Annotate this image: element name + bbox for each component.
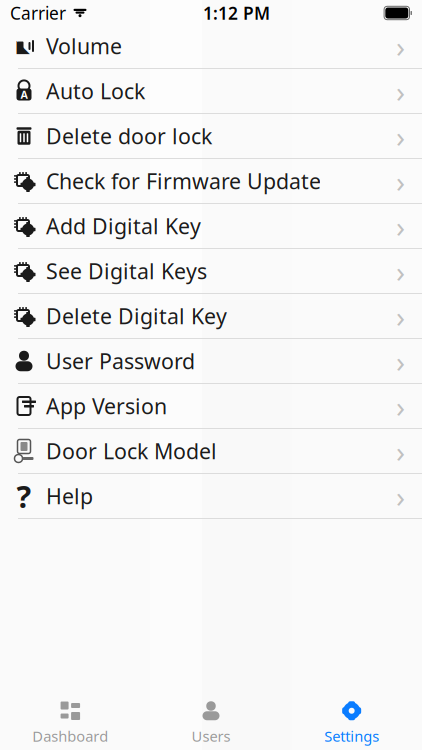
button[interactable]: See Digital Keys xyxy=(0,249,422,294)
staticText: Auto Lock xyxy=(46,77,145,105)
staticText: › xyxy=(396,116,405,155)
button[interactable]: App Version xyxy=(0,384,422,429)
staticText: Door Lock Model xyxy=(46,437,217,465)
button[interactable]: A xyxy=(0,69,422,114)
staticText: Dashboard xyxy=(32,726,108,746)
staticText: ? xyxy=(16,476,31,516)
staticText: › xyxy=(396,206,405,245)
button[interactable]: Delete door lock xyxy=(0,114,422,159)
staticText: User Password xyxy=(46,347,195,375)
staticText: See Digital Keys xyxy=(46,257,207,285)
button[interactable]: User Password xyxy=(0,339,422,384)
staticText: App Version xyxy=(46,392,167,420)
staticText: Check for Firmware Update xyxy=(46,167,321,195)
staticText: Help xyxy=(46,482,93,510)
staticText: › xyxy=(396,341,405,380)
staticText: Carrier xyxy=(10,1,66,24)
staticText: A xyxy=(20,87,27,102)
staticText: ◥ xyxy=(74,5,85,21)
staticText: Delete Digital Key xyxy=(46,302,227,330)
staticText: › xyxy=(396,26,405,65)
staticText: › xyxy=(396,161,405,200)
staticText: › xyxy=(396,386,405,425)
button[interactable]: ? xyxy=(0,474,422,519)
staticText: › xyxy=(396,71,405,110)
button[interactable]: Dashboard xyxy=(0,691,141,750)
button[interactable]: Delete Digital Key xyxy=(0,294,422,339)
staticText: 1:12 PM xyxy=(203,1,270,24)
staticText: Settings xyxy=(324,726,379,746)
staticText: Add Digital Key xyxy=(46,212,201,240)
button[interactable]: Settings xyxy=(281,691,422,750)
button[interactable]: Door Lock Model xyxy=(0,429,422,474)
staticText: Users xyxy=(191,726,230,746)
button[interactable]: Check for Firmware Update xyxy=(0,159,422,204)
staticText: › xyxy=(396,296,405,335)
button[interactable]: Add Digital Key xyxy=(0,204,422,249)
staticText: ◣ xyxy=(16,36,29,56)
staticText: Delete door lock xyxy=(46,122,212,150)
button[interactable]: Users xyxy=(141,691,281,750)
staticText: › xyxy=(396,251,405,290)
staticText: Volume xyxy=(46,32,122,60)
staticText: › xyxy=(396,431,405,470)
button[interactable]: ◣ xyxy=(0,24,422,69)
staticText: › xyxy=(396,476,405,515)
